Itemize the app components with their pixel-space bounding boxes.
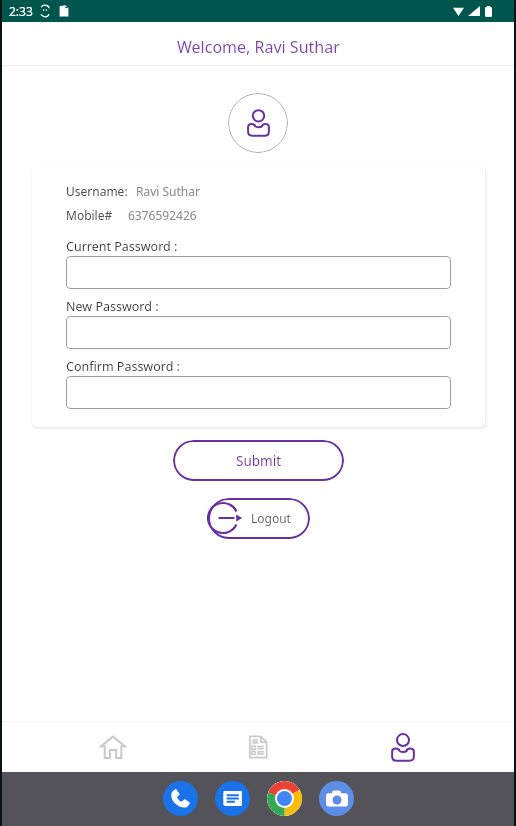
staticText: 2:33: [9, 3, 33, 19]
button[interactable]: Submit: [173, 440, 344, 481]
staticText: Mobile#: [66, 207, 113, 223]
staticText: Username:: [66, 183, 128, 199]
button[interactable]: Home: [41, 722, 185, 772]
button[interactable]: Forms: [185, 722, 330, 772]
button[interactable]: [66, 316, 451, 349]
staticText: Current Password :: [66, 238, 178, 255]
staticText: Welcome, Ravi Suthar: [177, 36, 340, 58]
button[interactable]: [66, 376, 451, 409]
button[interactable]: Logout: [206, 497, 310, 539]
button[interactable]: Chrome: [267, 781, 302, 816]
staticText: 6376592426: [128, 207, 197, 223]
button[interactable]: Profile: [330, 722, 475, 772]
button[interactable]: Messages: [215, 781, 250, 816]
staticText: Confirm Password :: [66, 358, 180, 375]
staticText: Ravi Suthar: [136, 183, 200, 199]
staticText: New Password :: [66, 298, 159, 315]
button[interactable]: Profile picture: [228, 93, 288, 153]
button[interactable]: [66, 256, 451, 289]
staticText: Logout: [251, 510, 291, 526]
staticText: Submit: [236, 452, 282, 470]
button[interactable]: Camera: [319, 781, 354, 816]
button[interactable]: Phone: [163, 781, 198, 816]
